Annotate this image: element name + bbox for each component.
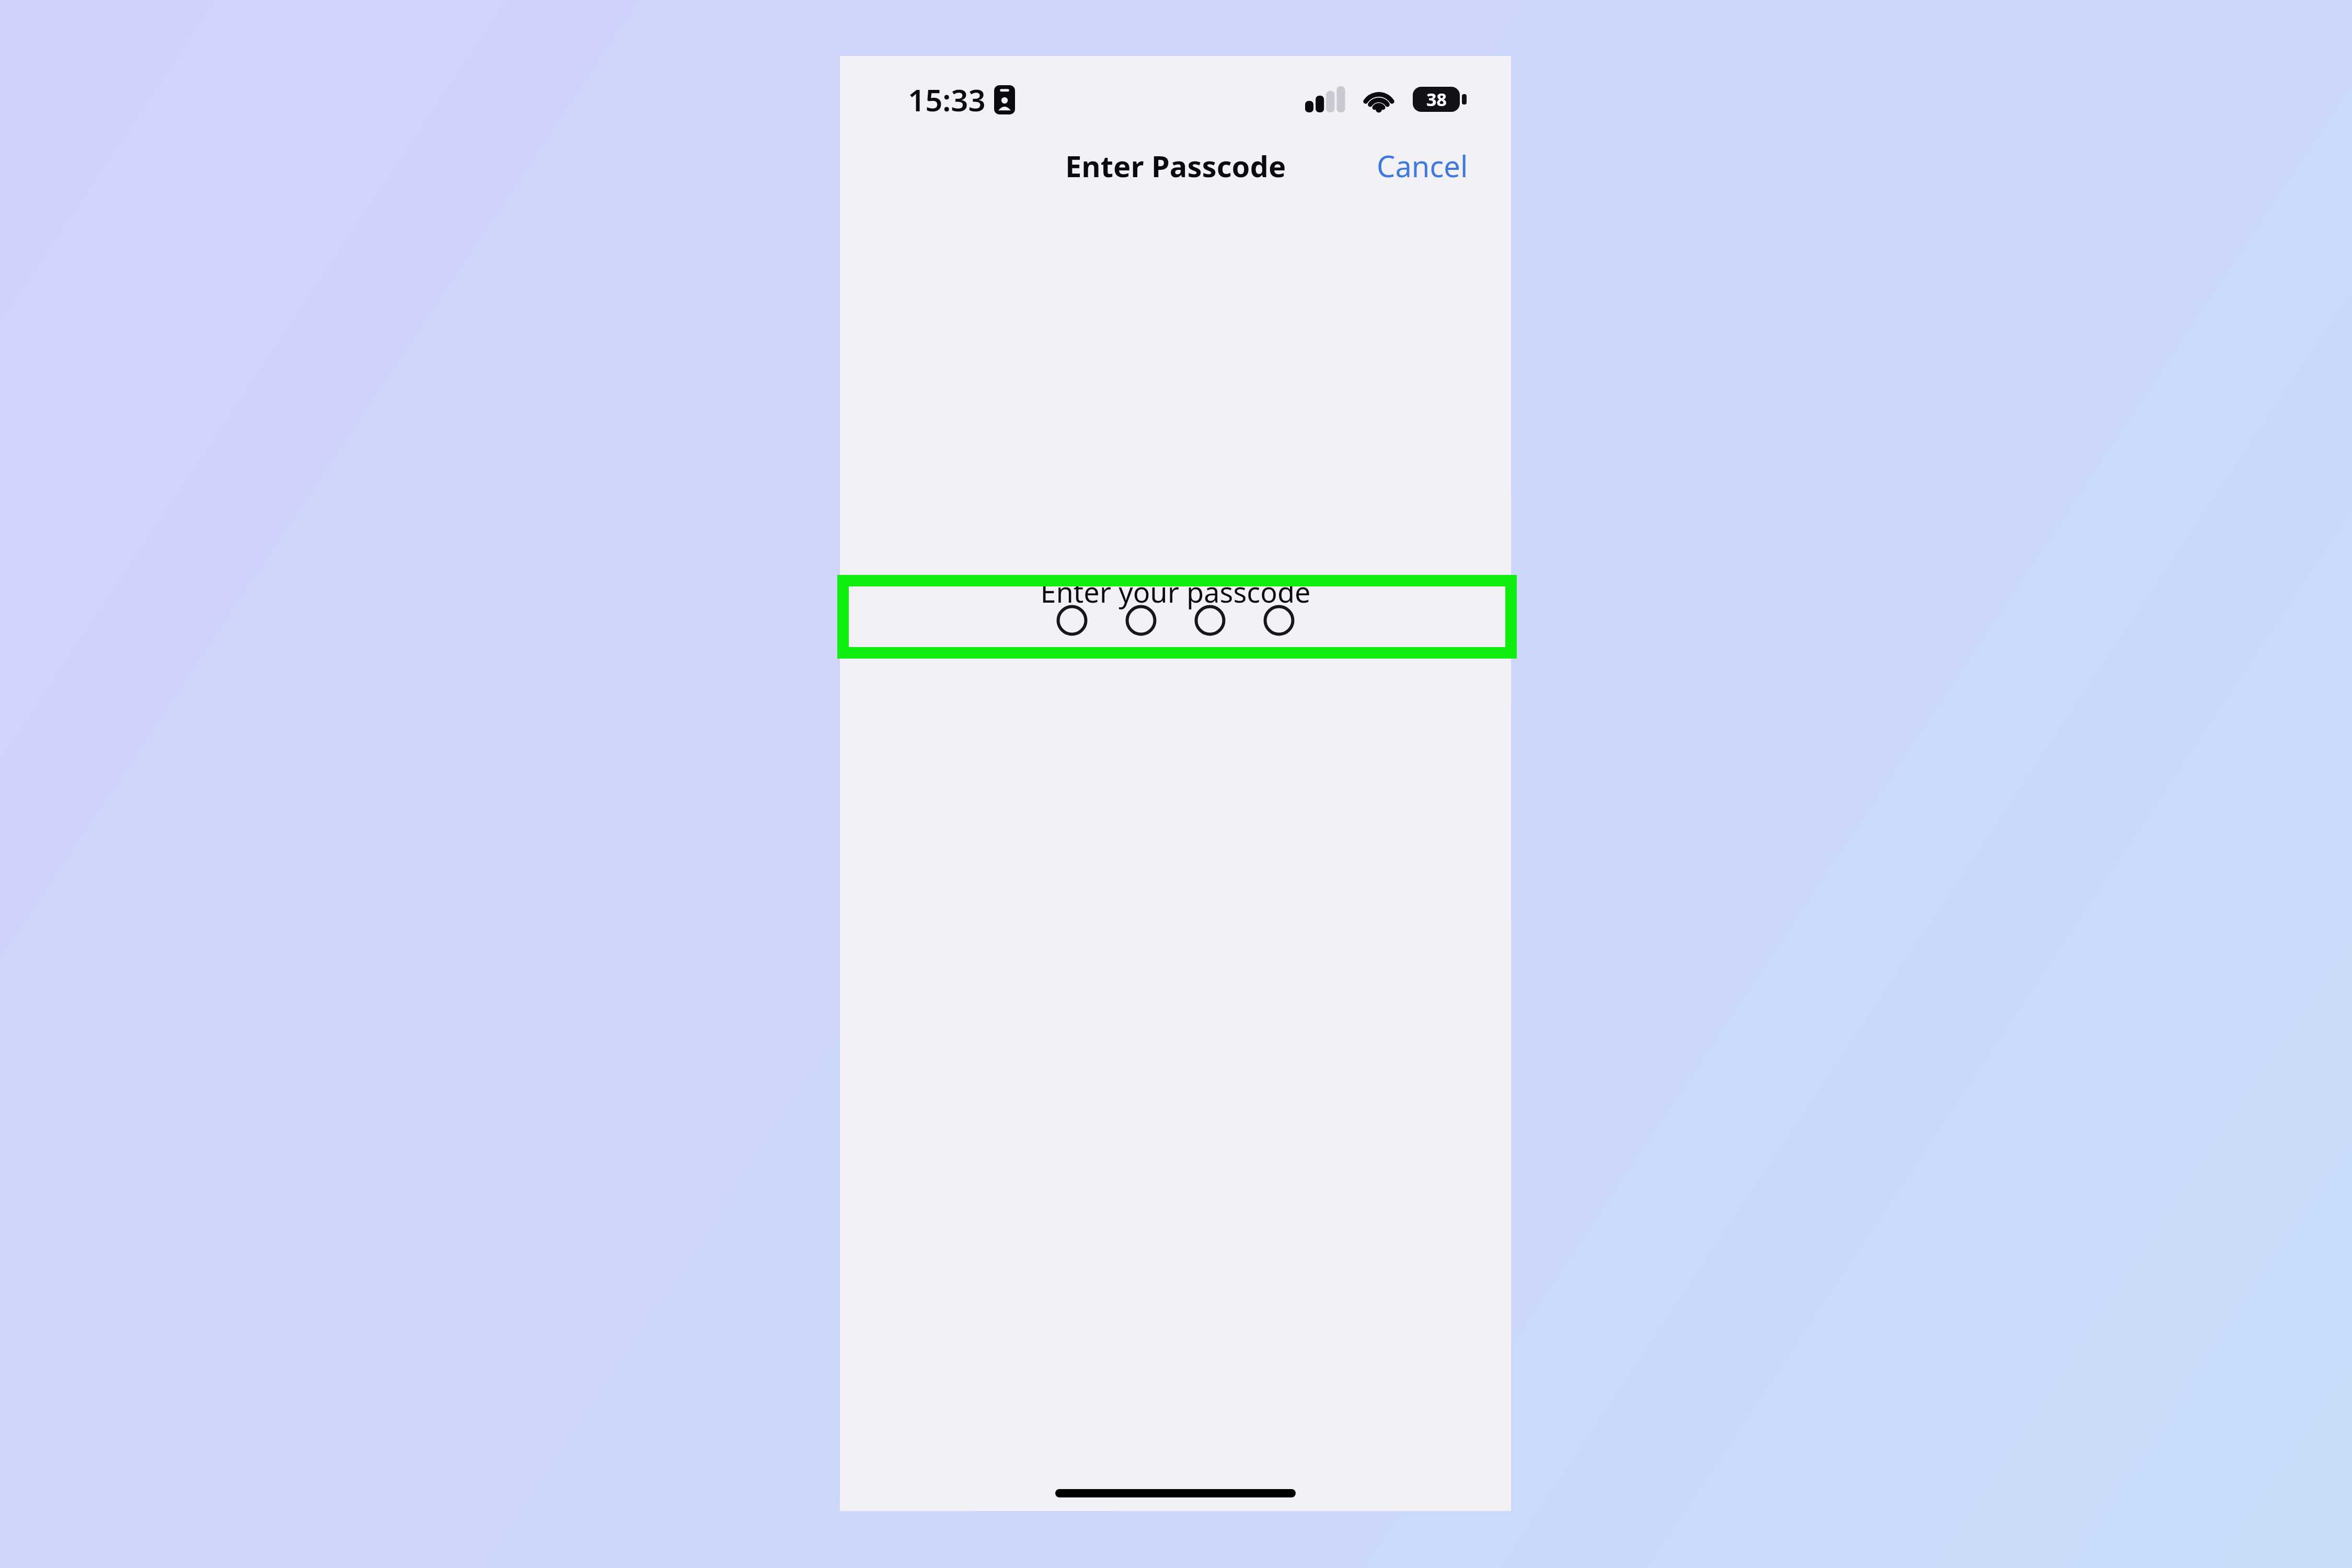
button[interactable]: Cancel xyxy=(1364,139,1481,193)
button[interactable]: Passcode entry field xyxy=(840,579,1511,662)
staticText: Cancel xyxy=(1377,146,1468,186)
staticText: Enter Passcode xyxy=(1065,146,1286,186)
button[interactable]: Enter Passcode xyxy=(1055,141,1297,191)
staticText: 15:33 xyxy=(908,79,986,120)
staticText: 38 xyxy=(1426,87,1447,111)
staticText: Enter your passcode xyxy=(1040,572,1311,611)
